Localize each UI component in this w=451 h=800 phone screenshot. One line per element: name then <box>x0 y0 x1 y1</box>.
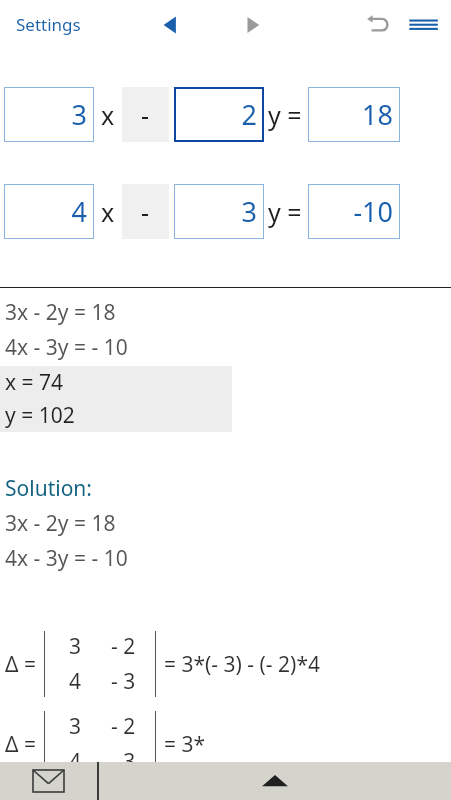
button[interactable]: Next <box>237 10 267 40</box>
button[interactable]: -10 <box>308 184 400 239</box>
staticText: y = <box>268 98 302 132</box>
staticText: 3 <box>69 712 82 741</box>
staticText: -10 <box>353 193 393 230</box>
staticText: 3 <box>241 193 257 230</box>
staticText: - <box>141 195 150 229</box>
staticText: - 2 <box>111 712 136 741</box>
button[interactable]: 4 <box>4 184 94 239</box>
staticText: Δ = <box>5 730 36 759</box>
staticText: 3 <box>71 96 87 133</box>
staticText: - <box>141 98 150 132</box>
staticText: - 3 <box>111 667 136 696</box>
button[interactable]: 3 <box>4 87 94 142</box>
staticText: Settings <box>16 13 81 36</box>
button[interactable]: Expand <box>99 762 451 800</box>
staticText: - 2 <box>111 632 136 661</box>
staticText: 4x - 3y = - 10 <box>5 333 128 362</box>
staticText: Solution: <box>5 474 92 503</box>
staticText: 4 <box>69 747 82 776</box>
button[interactable]: Settings <box>8 7 89 42</box>
staticText: Δ = <box>5 650 36 679</box>
staticText: = 3* <box>164 730 206 759</box>
button[interactable]: Menu <box>404 8 442 46</box>
staticText: - 3 <box>111 747 136 776</box>
staticText: 2 <box>241 96 257 133</box>
staticText: x <box>101 98 115 132</box>
button[interactable]: Undo <box>362 8 394 40</box>
staticText: = 3*(- 3) - (- 2)*4 <box>164 650 320 679</box>
button[interactable]: 18 <box>308 87 400 142</box>
button[interactable]: 2 <box>174 87 264 142</box>
staticText: y = <box>268 195 302 229</box>
staticText: 3x - 2y = 18 <box>5 298 116 327</box>
staticText: 4 <box>69 667 82 696</box>
staticText: y = 102 <box>5 401 75 430</box>
staticText: 3 <box>69 632 82 661</box>
button[interactable]: Previous <box>157 10 187 40</box>
staticText: 3x - 2y = 18 <box>5 509 116 538</box>
staticText: x <box>101 195 115 229</box>
staticText: 4 <box>71 193 87 230</box>
staticText: x = 74 <box>5 368 64 397</box>
staticText: 18 <box>362 96 393 133</box>
button[interactable]: 3 <box>174 184 264 239</box>
button[interactable]: Minus <box>122 184 169 239</box>
staticText: 4x - 3y = - 10 <box>5 544 128 573</box>
button[interactable]: Minus <box>122 87 169 142</box>
button[interactable]: Mail <box>0 762 97 800</box>
